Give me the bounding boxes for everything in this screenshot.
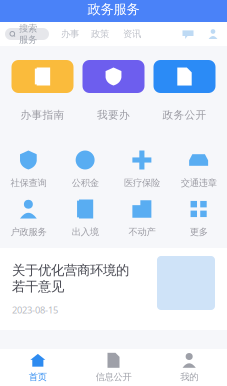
staticText: 政策 bbox=[91, 28, 109, 40]
staticText: 社保查询 bbox=[10, 177, 46, 189]
button[interactable]: 我的 bbox=[151, 349, 227, 386]
staticText: 出入境 bbox=[72, 226, 99, 238]
staticText: 医疗保险 bbox=[124, 177, 160, 189]
button[interactable]: 不动产 bbox=[113, 199, 170, 236]
button[interactable]: 交通违章 bbox=[170, 150, 227, 187]
staticText: 关于优化营商环境的若干意见 bbox=[12, 262, 129, 295]
button[interactable]: 办事 bbox=[60, 28, 80, 40]
staticText: 更多 bbox=[190, 226, 208, 238]
button[interactable]: 消息 bbox=[180, 27, 196, 41]
staticText: 交通违章 bbox=[181, 177, 217, 189]
staticText: 办事 bbox=[61, 28, 79, 40]
button[interactable]: 办事指南 bbox=[11, 60, 73, 119]
button[interactable]: 社保查询 bbox=[0, 150, 57, 187]
staticText: 信息公开 bbox=[95, 371, 131, 383]
staticText: 政务公开 bbox=[162, 108, 206, 121]
staticText: 首页 bbox=[29, 371, 47, 383]
button[interactable]: 我要办 bbox=[82, 60, 144, 119]
staticText: 我的 bbox=[180, 371, 198, 383]
button[interactable]: 公积金 bbox=[57, 150, 114, 187]
button[interactable]: 资讯 bbox=[120, 28, 144, 40]
button[interactable]: 出入境 bbox=[57, 199, 114, 236]
button[interactable]: 首页 bbox=[0, 349, 76, 386]
button[interactable]: 关于优化营商环境的若干意见 bbox=[0, 248, 227, 330]
button[interactable]: 搜索服务 bbox=[5, 28, 49, 40]
staticText: 我要办 bbox=[97, 108, 130, 121]
button[interactable]: 政务公开 bbox=[153, 60, 215, 119]
staticText: 不动产 bbox=[128, 226, 155, 238]
button[interactable]: 政策 bbox=[88, 28, 112, 40]
staticText: 户政服务 bbox=[10, 226, 46, 238]
button[interactable]: 我的 bbox=[205, 27, 221, 41]
button[interactable]: 户政服务 bbox=[0, 199, 57, 236]
button[interactable]: 更多 bbox=[170, 199, 227, 236]
staticText: 公积金 bbox=[72, 177, 99, 189]
staticText: 2023-08-15 bbox=[12, 304, 58, 316]
staticText: 政务服务 bbox=[87, 1, 139, 17]
button[interactable]: 医疗保险 bbox=[113, 150, 170, 187]
staticText: 搜索服务 bbox=[19, 22, 37, 45]
staticText: 办事指南 bbox=[20, 108, 64, 121]
staticText: 资讯 bbox=[123, 28, 141, 40]
button[interactable]: 信息公开 bbox=[76, 349, 151, 386]
